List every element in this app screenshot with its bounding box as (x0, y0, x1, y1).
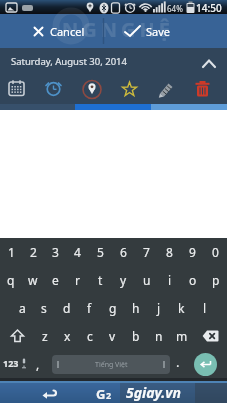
staticText: f (87, 300, 92, 316)
staticText: d (63, 300, 71, 316)
staticText: y (120, 272, 127, 288)
staticText: j (157, 300, 161, 316)
button[interactable]: v (101, 322, 124, 350)
staticText: v (109, 328, 116, 344)
button[interactable] (193, 322, 227, 350)
staticText: G (96, 385, 106, 403)
button[interactable]: n (147, 322, 170, 350)
button[interactable]: Tiếng Việt (52, 355, 170, 374)
button[interactable]: z (34, 322, 56, 350)
button[interactable] (194, 353, 217, 376)
staticText: 6 (120, 244, 127, 260)
staticText: 5giay.vn (126, 383, 181, 402)
button[interactable]: Cancel (33, 14, 103, 48)
staticText: q (7, 272, 15, 288)
staticText: 64% (167, 3, 183, 14)
button[interactable]: 123 (3, 357, 27, 369)
staticText: Tiếng Việt (95, 360, 128, 370)
button[interactable]: g (101, 294, 124, 322)
button[interactable]: y (112, 266, 135, 294)
button[interactable]: 1 (0, 238, 22, 266)
staticText: e (52, 272, 59, 288)
staticText: Saturday, August 30, 2014 (11, 55, 127, 68)
staticText: 123 (3, 357, 19, 369)
button[interactable]: Save (124, 14, 217, 48)
button[interactable] (111, 77, 148, 104)
button[interactable]: 9 (181, 238, 204, 266)
staticText: Save (146, 24, 171, 39)
staticText: i (168, 272, 172, 288)
staticText: NGNGHỆ (62, 16, 174, 43)
staticText: g (109, 300, 117, 316)
staticText: r (75, 272, 80, 288)
staticText: l (203, 300, 207, 316)
staticText: k (178, 300, 185, 316)
button[interactable] (148, 77, 185, 104)
button[interactable]: x (56, 322, 78, 350)
button[interactable]: , (36, 356, 40, 372)
staticText: x (64, 328, 71, 344)
button[interactable]: d (55, 294, 78, 322)
button[interactable]: 0 (204, 238, 227, 266)
button[interactable]: a (11, 294, 33, 322)
button[interactable]: e (44, 266, 66, 294)
staticText: b (132, 328, 140, 344)
staticText: 14:50 (196, 1, 222, 15)
button[interactable] (0, 77, 37, 104)
staticText: 9 (189, 244, 196, 260)
staticText: s (41, 300, 47, 316)
button[interactable] (185, 77, 222, 104)
button[interactable]: h (124, 294, 147, 322)
button[interactable]: 3 (44, 238, 66, 266)
button[interactable] (0, 383, 80, 403)
button[interactable]: Saturday, August 30, 2014 (0, 48, 227, 77)
button[interactable] (0, 322, 34, 350)
staticText: 2 (30, 244, 37, 260)
button[interactable] (74, 77, 111, 104)
button[interactable]: 8 (158, 238, 181, 266)
staticText: t (98, 272, 103, 288)
button[interactable]: l (193, 294, 216, 322)
staticText: 5 (97, 244, 104, 260)
button[interactable]: r (66, 266, 89, 294)
button[interactable]: f (78, 294, 101, 322)
staticText: 3 (52, 244, 59, 260)
button[interactable]: 4 (66, 238, 89, 266)
button[interactable]: s (33, 294, 55, 322)
button[interactable]: w (22, 266, 44, 294)
button[interactable]: o (181, 266, 204, 294)
button[interactable]: p (204, 266, 227, 294)
button[interactable]: 7 (135, 238, 158, 266)
staticText: h (132, 300, 140, 316)
button[interactable]: k (170, 294, 193, 322)
staticText: w (28, 272, 38, 288)
button[interactable]: 5 (89, 238, 112, 266)
button[interactable] (37, 77, 74, 104)
button[interactable]: . (176, 353, 180, 371)
staticText: 8 (166, 244, 173, 260)
staticText: a (19, 300, 26, 316)
staticText: o (189, 272, 197, 288)
staticText: p (212, 272, 220, 288)
button[interactable]: G (96, 385, 112, 403)
staticText: m (176, 328, 188, 344)
staticText: 4 (74, 244, 81, 260)
staticText: u (143, 272, 151, 288)
button[interactable]: m (170, 322, 193, 350)
button[interactable]: t (89, 266, 112, 294)
button[interactable]: b (124, 322, 147, 350)
button[interactable]: 6 (112, 238, 135, 266)
button[interactable]: j (147, 294, 170, 322)
staticText: 7 (143, 244, 150, 260)
button[interactable]: 2 (22, 238, 44, 266)
staticText: n (155, 328, 163, 344)
staticText: Cancel (50, 24, 85, 39)
staticText: z (42, 328, 48, 344)
staticText: 2 (106, 389, 112, 401)
staticText: 1 (8, 244, 15, 260)
button[interactable]: q (0, 266, 22, 294)
staticText: c (87, 328, 93, 344)
button[interactable]: i (158, 266, 181, 294)
button[interactable]: c (78, 322, 101, 350)
button[interactable]: u (135, 266, 158, 294)
